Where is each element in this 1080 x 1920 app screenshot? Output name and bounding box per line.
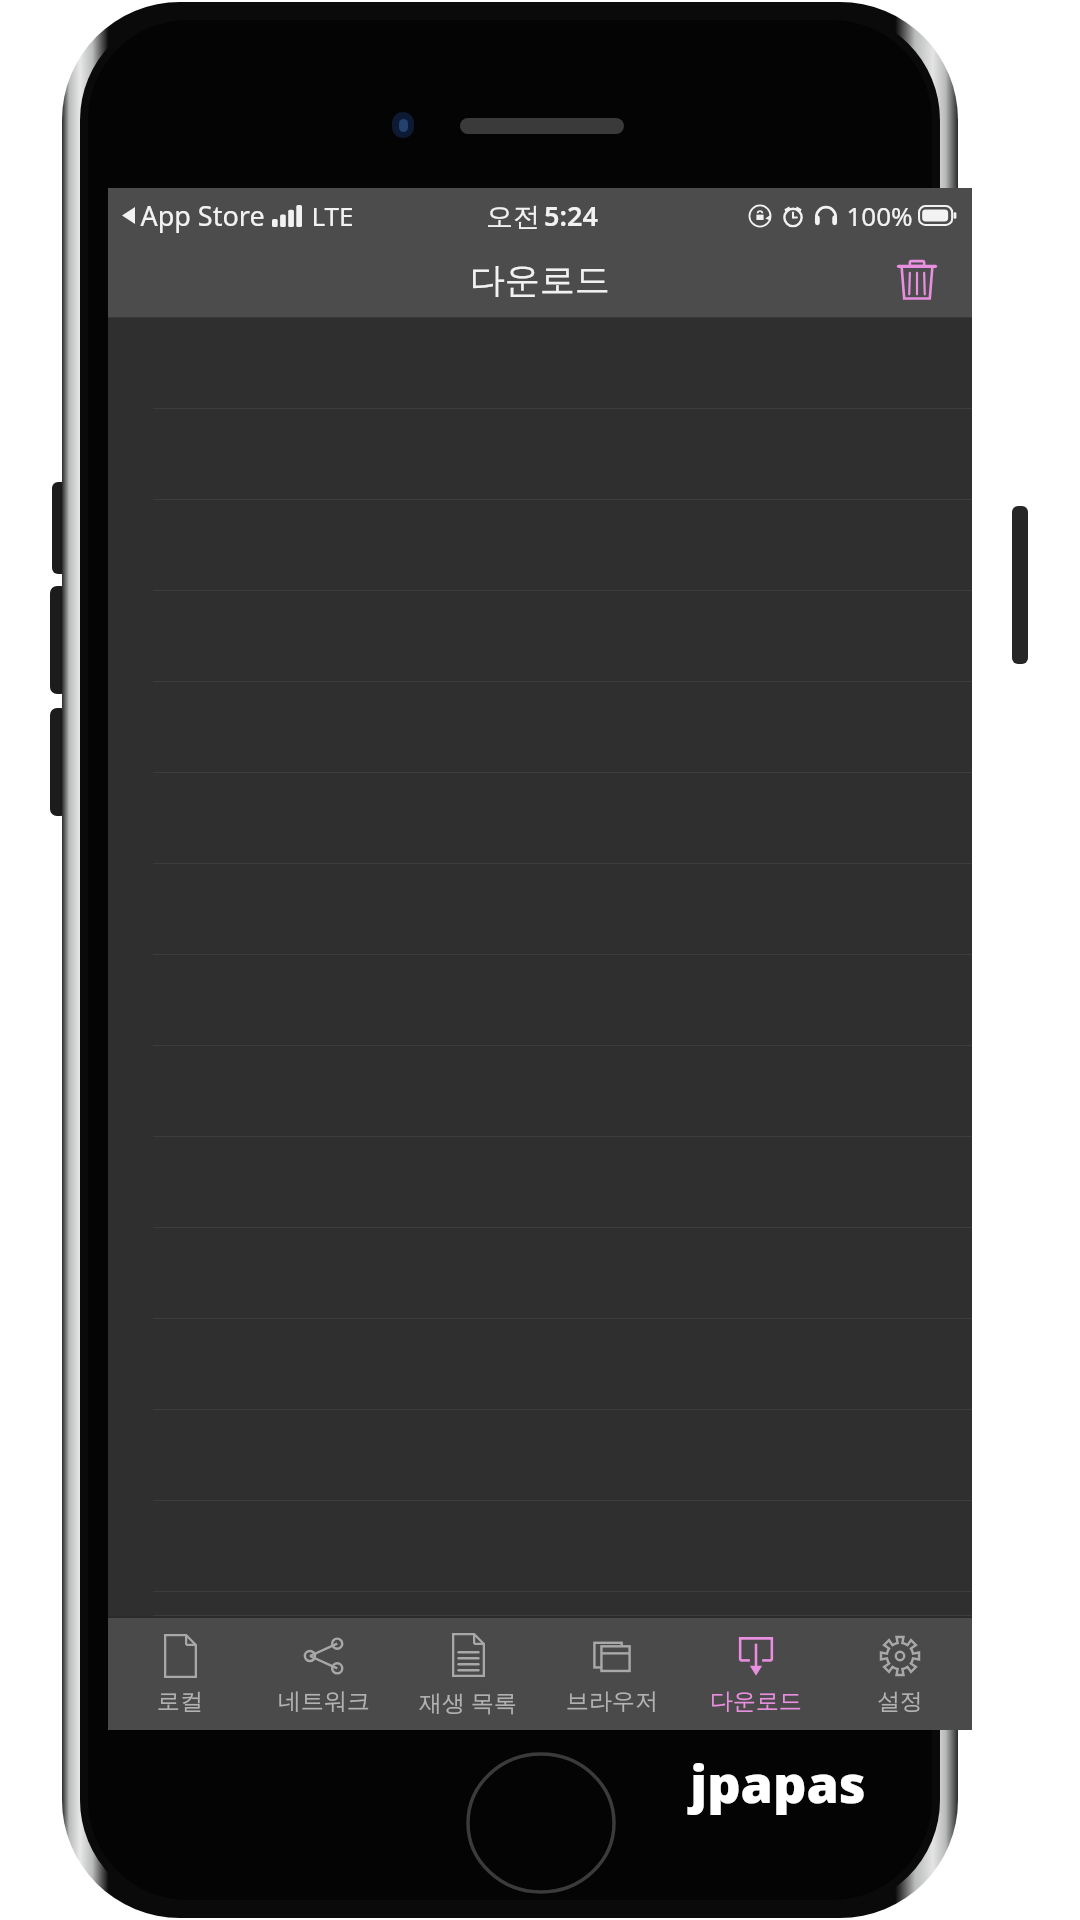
- staticText: 설정: [877, 1687, 923, 1716]
- staticText: 다운로드: [470, 258, 610, 302]
- button[interactable]: 로컬: [108, 1618, 252, 1730]
- staticText: 재생 목록: [419, 1686, 517, 1717]
- staticText: 5:24: [544, 197, 598, 234]
- staticText: LTE: [311, 198, 354, 233]
- staticText: 브라우저: [566, 1687, 658, 1716]
- staticText: 오전: [482, 197, 544, 234]
- staticText: 100%: [846, 198, 913, 233]
- button[interactable]: 네트워크: [252, 1618, 396, 1730]
- button[interactable]: App Store: [122, 197, 354, 234]
- button[interactable]: 재생 목록: [396, 1618, 540, 1730]
- staticText: App Store: [140, 197, 265, 234]
- staticText: jpapas: [690, 1747, 866, 1818]
- button[interactable]: Delete all downloads: [884, 247, 950, 313]
- button[interactable]: 설정: [828, 1618, 972, 1730]
- staticText: 로컬: [157, 1687, 203, 1716]
- button[interactable]: 다운로드: [684, 1618, 828, 1730]
- button[interactable]: 브라우저: [540, 1618, 684, 1730]
- staticText: 다운로드: [710, 1687, 802, 1716]
- staticText: 네트워크: [278, 1687, 370, 1716]
